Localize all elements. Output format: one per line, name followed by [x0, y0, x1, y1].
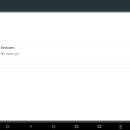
button[interactable]: Screenshot: [94, 121, 104, 130]
staticText: No items yet: [1, 52, 19, 56]
button[interactable]: Recents: [71, 121, 81, 130]
button[interactable]: Assistant: [2, 121, 12, 130]
button[interactable]: Home: [48, 121, 58, 130]
staticText: Reminders: [1, 46, 15, 49]
button[interactable]: Back: [25, 121, 35, 130]
button[interactable]: More options: [115, 121, 125, 130]
